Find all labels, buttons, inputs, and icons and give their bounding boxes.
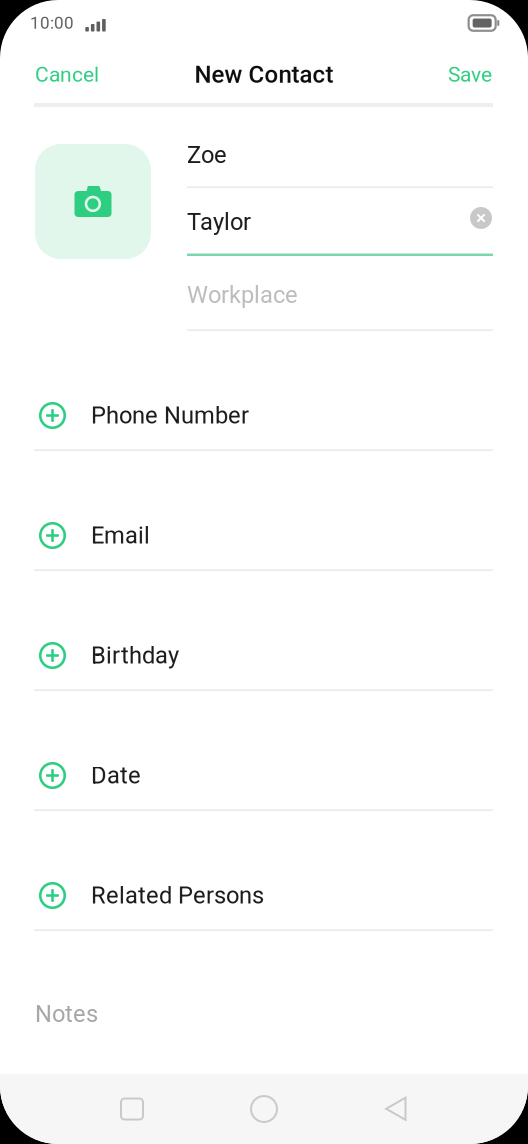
staticText: Cancel: [35, 62, 99, 87]
button[interactable]: Save: [428, 48, 492, 101]
button[interactable]: Date: [0, 691, 528, 811]
button[interactable]: Home: [198, 1074, 330, 1144]
staticText: Zoe: [187, 141, 227, 169]
staticText: Email: [91, 522, 150, 549]
button[interactable]: Phone Number: [0, 331, 528, 451]
button[interactable]: Cancel: [35, 48, 119, 101]
staticText: Notes: [35, 1000, 98, 1028]
button[interactable]: Related Persons: [0, 811, 528, 931]
staticText: Date: [91, 762, 141, 789]
button[interactable]: Birthday: [0, 571, 528, 691]
staticText: Workplace: [187, 281, 298, 309]
button[interactable]: Email: [0, 451, 528, 571]
staticText: Save: [448, 62, 492, 87]
button[interactable]: Back: [330, 1074, 462, 1144]
button[interactable]: Recent apps: [66, 1074, 198, 1144]
staticText: Related Persons: [91, 882, 264, 909]
staticText: Birthday: [91, 642, 179, 669]
staticText: Taylor: [187, 208, 251, 236]
staticText: New Contact: [194, 60, 333, 88]
staticText: Phone Number: [91, 402, 249, 429]
staticText: 10:00: [30, 13, 74, 33]
